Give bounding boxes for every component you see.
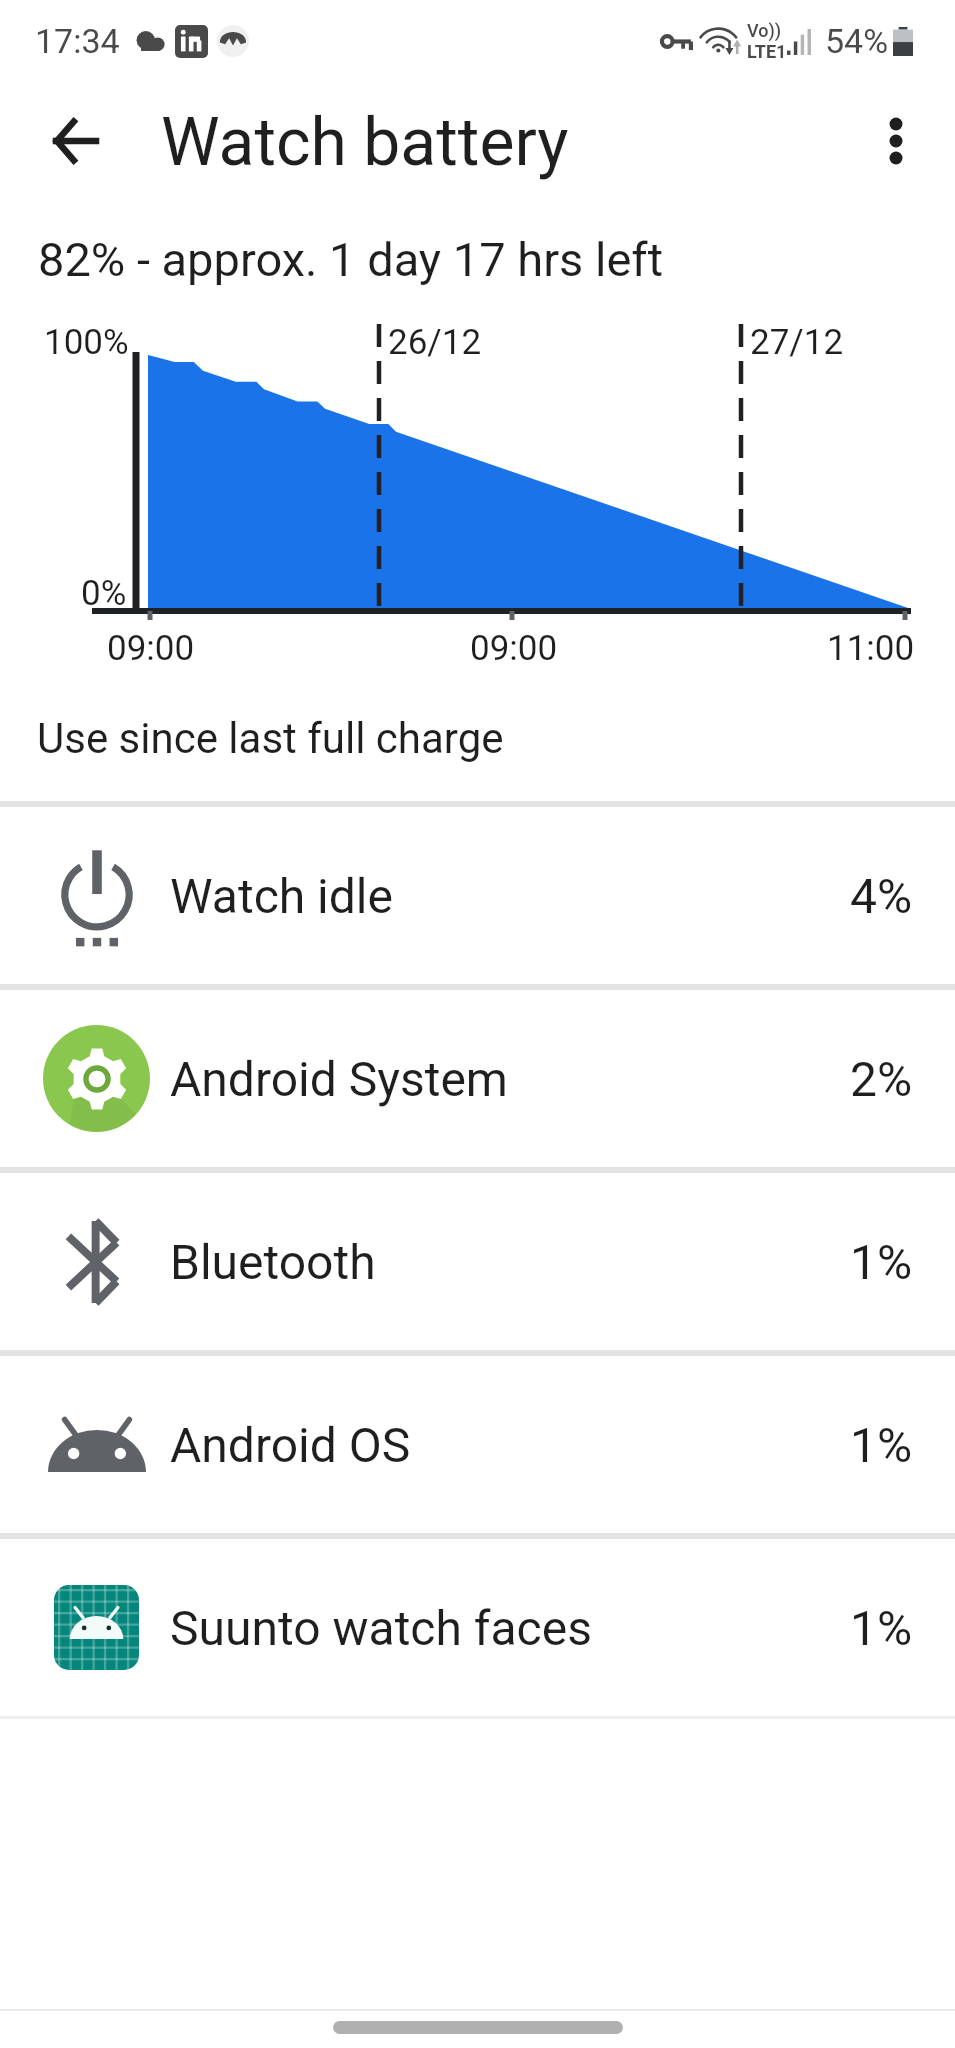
staticText: 1% bbox=[850, 1234, 913, 1290]
staticText: 09:00 bbox=[470, 628, 558, 669]
button[interactable]: Suunto watch faces bbox=[0, 1539, 955, 1716]
button[interactable]: More options bbox=[850, 95, 942, 187]
staticText: 100% bbox=[44, 322, 129, 363]
button[interactable]: Back bbox=[30, 95, 122, 187]
staticText: 11:00 bbox=[827, 628, 915, 669]
staticText: 2% bbox=[850, 1051, 913, 1107]
staticText: 27/12 bbox=[750, 322, 844, 363]
staticText: LTE1 bbox=[747, 41, 787, 62]
staticText: Android OS bbox=[170, 1417, 411, 1473]
staticText: 26/12 bbox=[388, 322, 482, 363]
staticText: Watch idle bbox=[170, 868, 393, 924]
staticText: 0% bbox=[81, 573, 127, 614]
staticText: Vo)) bbox=[747, 20, 782, 41]
staticText: 1% bbox=[850, 1417, 913, 1473]
button[interactable]: Android System bbox=[0, 990, 955, 1167]
staticText: Bluetooth bbox=[170, 1234, 376, 1290]
button[interactable]: Android OS bbox=[0, 1356, 955, 1533]
staticText: 09:00 bbox=[107, 628, 195, 669]
staticText: 1% bbox=[850, 1600, 913, 1656]
button[interactable]: Watch idle bbox=[0, 807, 955, 984]
staticText: 54% bbox=[825, 21, 889, 61]
staticText: Android System bbox=[170, 1051, 508, 1107]
staticText: Watch battery bbox=[161, 104, 569, 181]
button[interactable]: Bluetooth bbox=[0, 1173, 955, 1350]
staticText: 17:34 bbox=[35, 21, 120, 61]
staticText: Use since last full charge bbox=[37, 714, 504, 763]
staticText: Suunto watch faces bbox=[170, 1600, 592, 1656]
staticText: 82% - approx. 1 day 17 hrs left bbox=[38, 232, 664, 287]
staticText: 4% bbox=[850, 868, 913, 924]
